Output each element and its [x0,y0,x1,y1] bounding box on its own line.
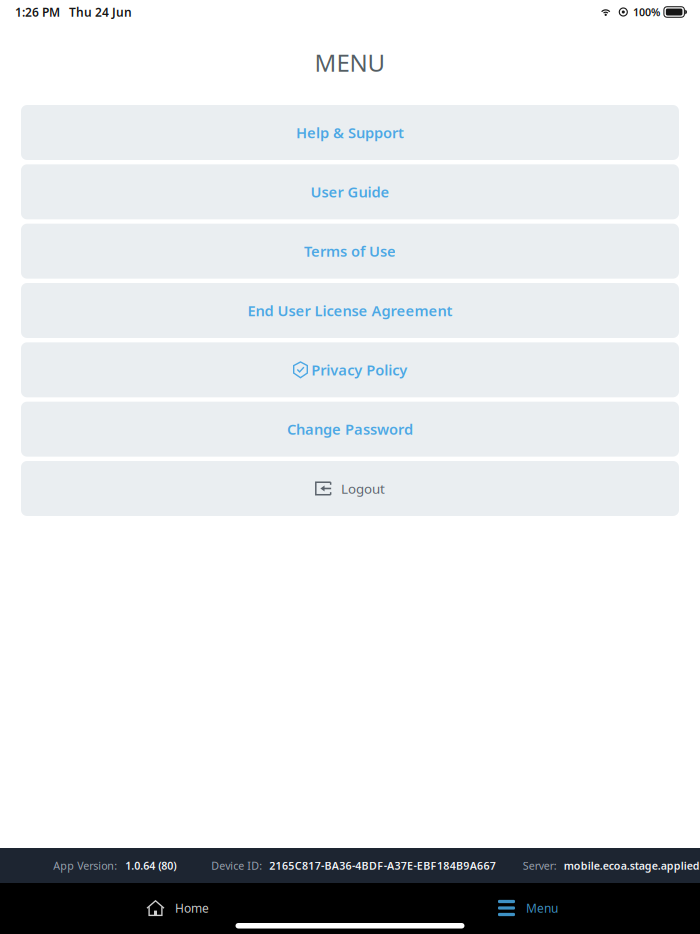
button[interactable]: Privacy Policy [21,342,679,397]
button[interactable]: Logout [21,461,679,516]
staticText: Device ID: [211,858,262,873]
staticText: App Version: [53,858,117,873]
button[interactable]: User Guide [21,164,679,219]
button[interactable]: Home [0,889,350,927]
staticText: Privacy Policy [311,360,407,380]
button[interactable]: Terms of Use [21,224,679,279]
button[interactable]: Menu [350,889,700,927]
staticText: Terms of Use [304,241,396,261]
staticText: Home [175,900,209,916]
staticText: 1.0.64 (80) [125,858,176,873]
staticText: Thu 24 Jun [69,4,132,20]
button[interactable]: Help & Support [21,105,679,160]
staticText: Logout [341,480,385,497]
staticText: 1:26 PM [15,4,60,20]
staticText: Change Password [287,419,413,439]
staticText: Help & Support [296,123,404,142]
button[interactable]: End User License Agreement [21,283,679,338]
staticText: mobile.ecoa.stage.applied. [564,858,700,873]
staticText: 2165C817-BA36-4BDF-A37E-EBF184B9A667 [269,858,496,873]
staticText: End User License Agreement [247,301,452,320]
staticText: MENU [314,47,385,78]
staticText: 100% [633,5,660,19]
button[interactable]: Change Password [21,402,679,457]
staticText: Menu [526,900,558,916]
staticText: Server: [523,858,557,873]
staticText: User Guide [310,182,389,202]
